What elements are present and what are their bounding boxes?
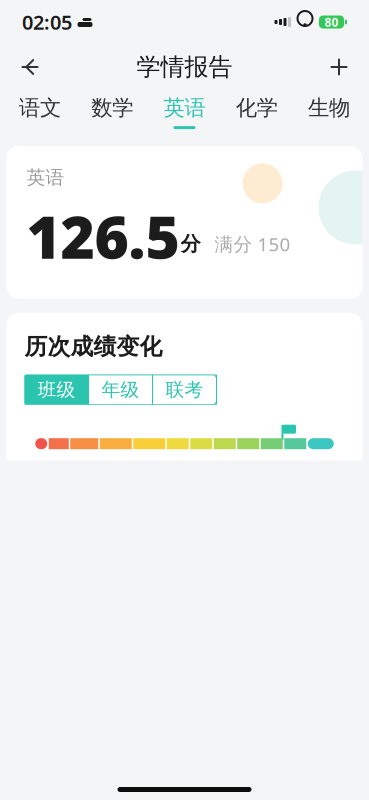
staticText: 语文	[19, 95, 61, 121]
button[interactable]: 添加	[317, 45, 361, 89]
button[interactable]: 数学	[76, 89, 148, 135]
staticText: 学情报告	[136, 52, 232, 82]
button[interactable]: 化学	[221, 89, 293, 135]
staticText: 年级	[101, 378, 139, 401]
staticText: 英语	[163, 95, 205, 121]
button[interactable]: 英语	[148, 89, 221, 135]
staticText: 联考	[165, 378, 203, 401]
staticText: 英语	[26, 166, 64, 189]
staticText: 历次成绩变化	[24, 333, 162, 361]
staticText: 分	[180, 232, 200, 256]
button[interactable]: 返回	[8, 45, 52, 89]
button[interactable]: 班级	[24, 375, 88, 405]
staticText: 班级	[37, 378, 75, 401]
staticText: 生物	[308, 95, 350, 121]
staticText: 126.5	[26, 197, 179, 275]
staticText: 满分 150	[214, 231, 290, 256]
button[interactable]: 年级	[88, 375, 152, 405]
staticText: 80	[324, 14, 338, 30]
staticText: 02:05	[22, 9, 72, 35]
staticText: 数学	[91, 95, 133, 121]
button[interactable]: 语文	[4, 89, 76, 135]
button[interactable]: 生物	[293, 89, 365, 135]
staticText: 化学	[236, 95, 278, 121]
button[interactable]: 联考	[152, 375, 216, 405]
